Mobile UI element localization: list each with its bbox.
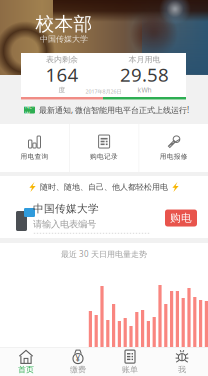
- staticText: 账单: [122, 365, 138, 374]
- staticText: 首页: [18, 365, 34, 374]
- staticText: 最近 30 天日用电量走势: [61, 249, 147, 259]
- staticText: 最新通知, 微信智能用电平台正式上线运行!: [39, 105, 189, 115]
- button[interactable]: NEW: [0, 96, 208, 124]
- staticText: 29.58: [120, 62, 169, 87]
- staticText: 购电记录: [90, 152, 118, 161]
- staticText: 度: [58, 86, 65, 94]
- staticText: 用电查询: [20, 152, 48, 161]
- staticText: 我: [178, 365, 186, 374]
- staticText: kWh: [137, 86, 151, 94]
- button[interactable]: 我: [156, 348, 208, 376]
- staticText: ¥: [75, 353, 80, 364]
- button[interactable]: 用电报修: [139, 124, 208, 172]
- button[interactable]: ¥: [52, 348, 104, 376]
- staticText: 表内剩余: [46, 55, 78, 64]
- staticText: 请输入电表编号: [33, 218, 96, 230]
- staticText: NEW: [25, 103, 34, 117]
- staticText: 购电: [170, 211, 192, 224]
- button[interactable]: 账单: [104, 348, 156, 376]
- staticText: 2017年8月26日: [85, 88, 121, 95]
- staticText: 缴费: [70, 365, 86, 374]
- button[interactable]: 购电: [165, 209, 197, 226]
- staticText: 校本部: [35, 12, 92, 35]
- staticText: 随时、随地、自己、他人都轻松用电: [40, 182, 168, 192]
- button[interactable]: 用电查询: [0, 124, 69, 172]
- button[interactable]: 购电记录: [70, 124, 139, 172]
- staticText: 中国传媒大学: [40, 34, 88, 44]
- staticText: 164: [45, 62, 78, 87]
- staticText: 用电报修: [160, 152, 188, 161]
- staticText: 本月用电: [128, 55, 160, 64]
- button[interactable]: 首页: [0, 348, 52, 376]
- staticText: 中国传媒大学: [33, 202, 99, 215]
